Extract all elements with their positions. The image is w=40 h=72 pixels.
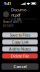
staticText: Copy Link — [11, 39, 28, 45]
button[interactable]: Delete File — [2, 53, 38, 58]
button[interactable]: Cancel — [1, 63, 38, 70]
staticText: Delete File — [11, 53, 29, 59]
staticText: Add to Notes — [9, 46, 31, 52]
staticText: 2.4 MB — [11, 18, 21, 21]
button[interactable]: Add to Notes — [2, 46, 38, 51]
staticText: Document.pdf — [11, 7, 27, 18]
button[interactable]: Save to Files — [2, 32, 38, 37]
staticText: 9:41 — [4, 1, 11, 6]
button[interactable]: Copy Link — [2, 39, 38, 44]
staticText: Cancel — [13, 64, 26, 69]
staticText: Save to Files — [9, 32, 30, 38]
staticText: Shared with 3 people — [3, 20, 22, 27]
